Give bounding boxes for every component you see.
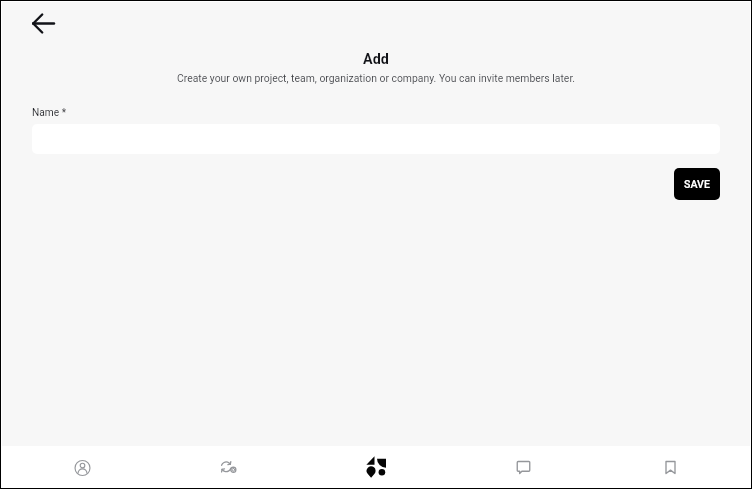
staticText: SAVE [684,178,710,190]
staticText: Name * [32,107,67,119]
staticText: Create your own project, team, organizat… [0,72,752,84]
button[interactable]: Back [29,9,57,37]
button[interactable]: Bookmarks [596,446,743,487]
staticText: Add [0,51,752,68]
button[interactable]: Sync [155,446,302,487]
button[interactable]: Shapes [302,446,449,487]
button[interactable]: Messages [449,446,596,487]
button[interactable]: SAVE [674,168,720,200]
button[interactable]: Account [8,446,155,487]
